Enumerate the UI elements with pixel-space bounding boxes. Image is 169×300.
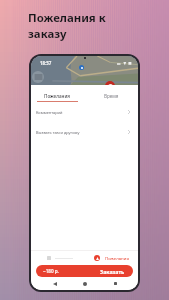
button[interactable]: Back (47, 277, 62, 290)
button[interactable]: Home (77, 277, 92, 290)
staticText: Заказать (100, 268, 125, 275)
staticText: Пожелания (105, 255, 129, 261)
button[interactable] (47, 256, 73, 260)
button[interactable]: Комментарий (31, 102, 138, 122)
button[interactable]: Вызвать такси другому (31, 122, 138, 142)
button[interactable]: Menu (32, 71, 44, 83)
staticText: Вызвать такси другому (36, 130, 80, 135)
staticText: Пожелания (44, 93, 71, 99)
button[interactable]: ~180 р. (36, 265, 133, 277)
button[interactable]: Пожелания (31, 85, 84, 102)
button[interactable]: Пожелания (94, 255, 129, 261)
staticText: Комментарий (36, 110, 63, 115)
staticText: Пожелания к заказу (28, 10, 106, 42)
staticText: 18:57 (40, 60, 52, 66)
staticText: ~180 р. (43, 268, 59, 274)
staticText: Время (104, 93, 119, 99)
button[interactable]: Recent apps (108, 277, 123, 290)
button[interactable]: Время (84, 85, 138, 102)
